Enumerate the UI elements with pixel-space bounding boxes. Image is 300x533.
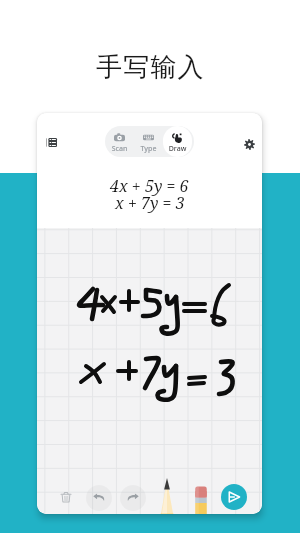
button[interactable]: Redo: [122, 486, 144, 508]
staticText: Scan: [105, 144, 134, 154]
staticText: Draw: [163, 144, 192, 154]
staticText: Type: [134, 144, 163, 154]
button[interactable]: Undo: [88, 486, 110, 508]
button[interactable]: Eraser: [193, 485, 209, 514]
button[interactable]: Pen: [158, 478, 176, 514]
staticText: 手写输入: [96, 51, 205, 84]
button[interactable]: Send: [221, 484, 247, 510]
staticText: x + 7y = 3: [115, 192, 185, 214]
button[interactable]: Settings: [237, 132, 261, 156]
button[interactable]: Scan: [105, 126, 134, 157]
button[interactable]: Delete: [55, 486, 77, 508]
button[interactable]: Type: [134, 126, 163, 157]
staticText: 4x + 5y = 6: [110, 175, 189, 197]
button[interactable]: History: [38, 129, 64, 155]
button[interactable]: Draw: [163, 126, 192, 157]
